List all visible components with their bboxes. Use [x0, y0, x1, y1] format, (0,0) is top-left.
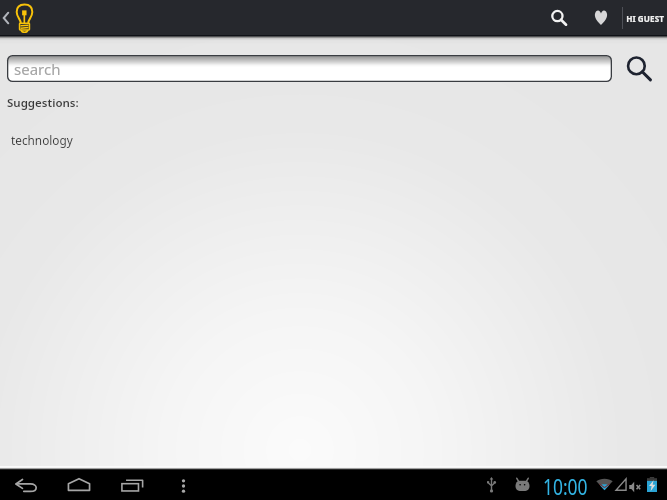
button[interactable]: Back [0, 0, 12, 35]
button[interactable]: More options [168, 470, 198, 500]
button[interactable]: Search [547, 0, 571, 35]
button[interactable]: Recents [109, 470, 155, 500]
button[interactable]: technology [0, 130, 667, 149]
button[interactable]: Back [1, 470, 51, 500]
button[interactable]: HI GUEST [623, 0, 667, 35]
staticText: HI GUEST [626, 12, 665, 24]
staticText: technology [11, 132, 73, 148]
button[interactable]: Search [622, 51, 656, 87]
staticText: Suggestions: [7, 95, 79, 111]
staticText: search [14, 59, 61, 79]
staticText: 10:00 [543, 473, 588, 500]
button[interactable]: Favorites [591, 0, 610, 35]
button[interactable]: Home [13, 0, 34, 35]
button[interactable]: search [7, 55, 612, 82]
button[interactable]: Home [55, 470, 103, 500]
